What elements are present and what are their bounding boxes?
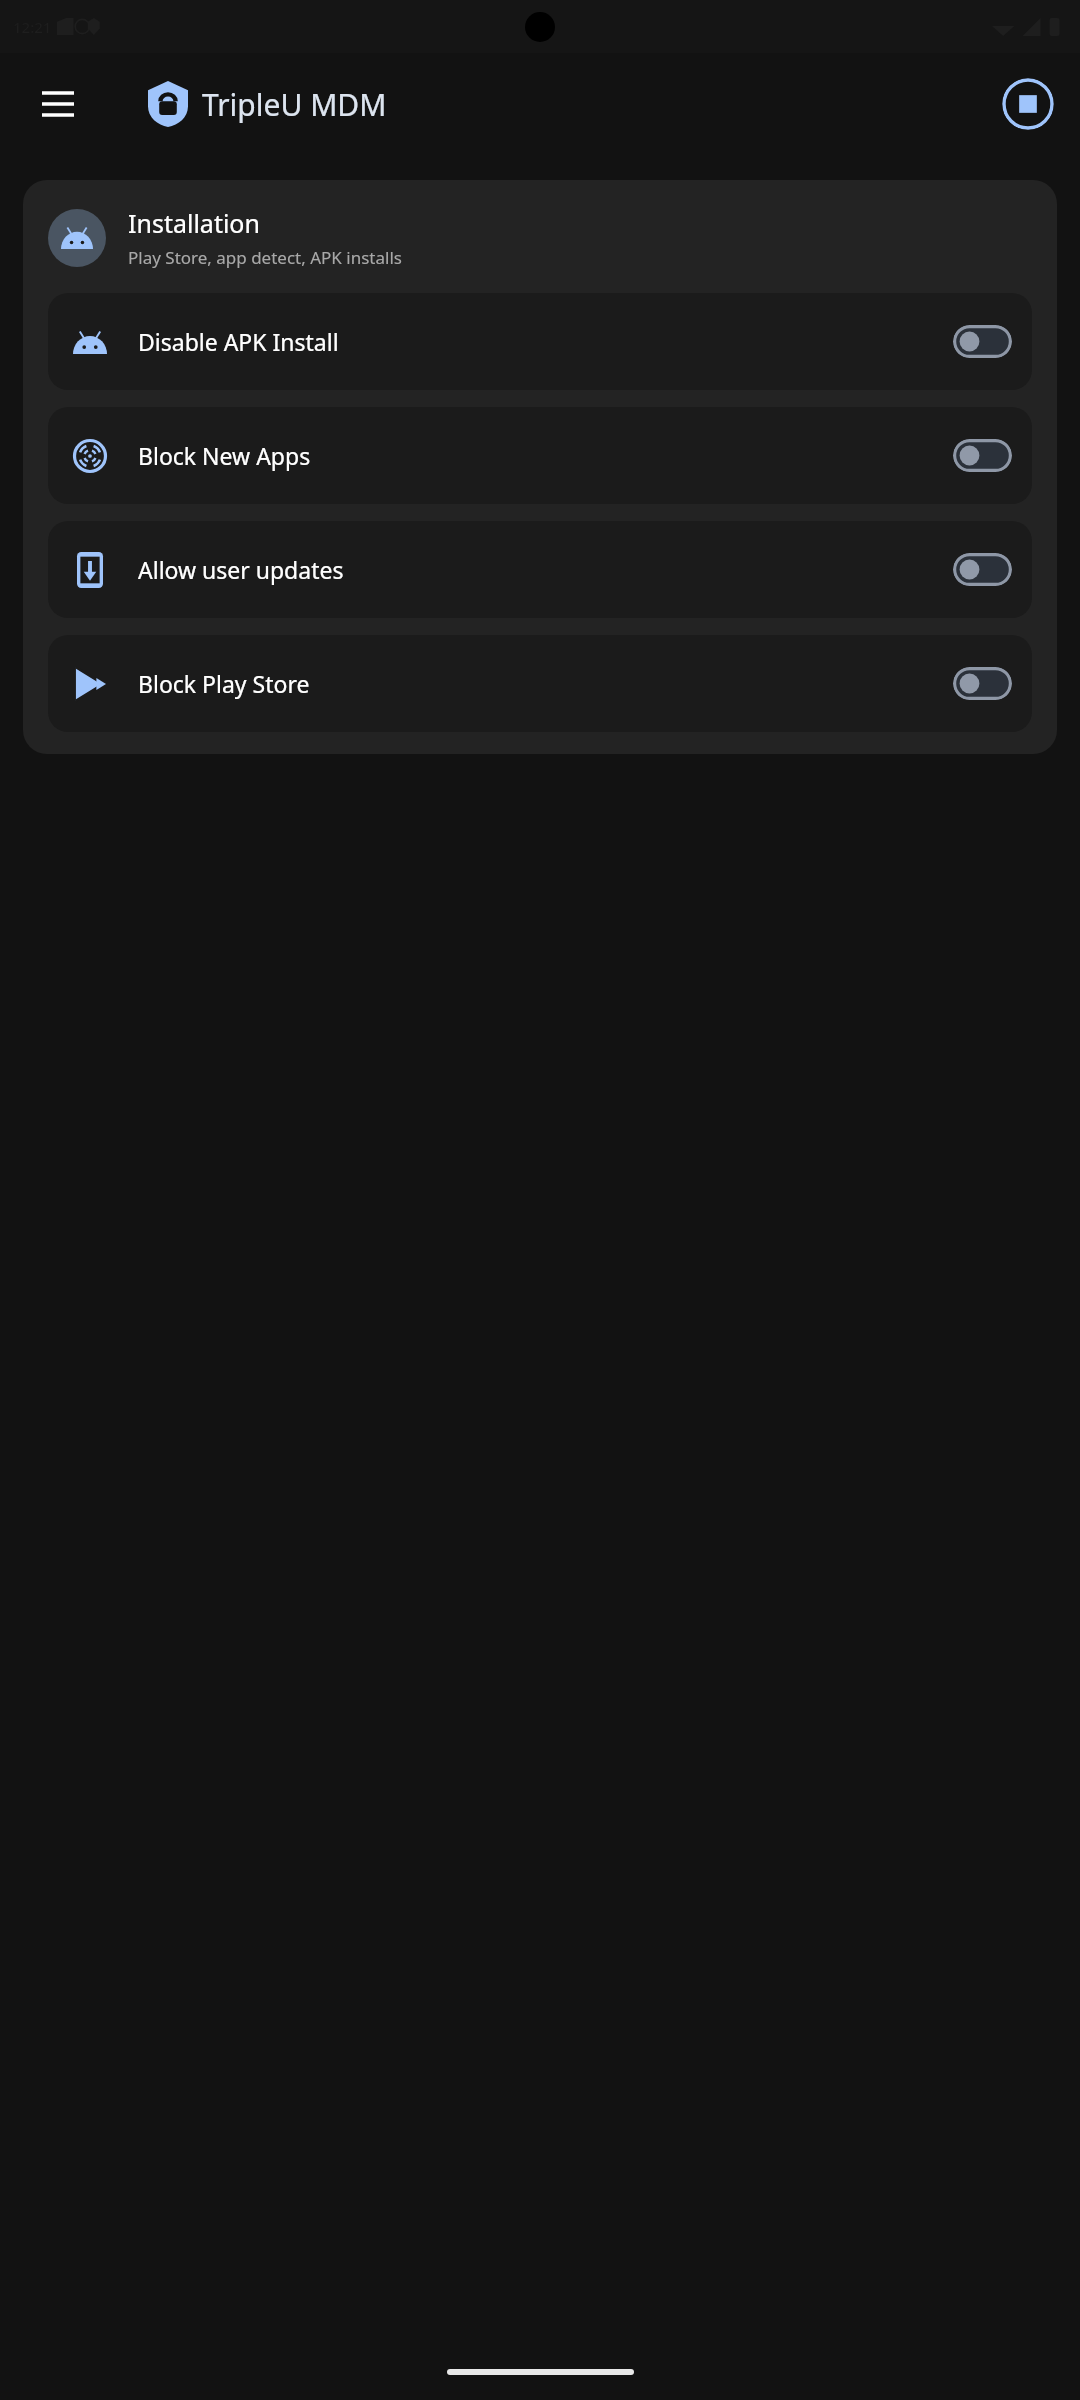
button[interactable]: Installation: [48, 202, 1032, 273]
button[interactable]: Toggle off: [953, 439, 1012, 472]
staticText: Block New Apps: [138, 440, 953, 471]
staticText: Installation: [128, 206, 260, 240]
button[interactable]: Toggle off: [953, 325, 1012, 358]
button[interactable]: Toggle off: [953, 553, 1012, 586]
staticText: Block Play Store: [138, 668, 953, 699]
button[interactable]: Block New Apps: [48, 407, 1032, 504]
staticText: Disable APK Install: [138, 326, 953, 357]
button[interactable]: Block Play Store: [48, 635, 1032, 732]
staticText: TripleU MDM: [202, 84, 387, 125]
button[interactable]: Disable APK Install: [48, 293, 1032, 390]
staticText: Play Store, app detect, APK installs: [128, 246, 402, 269]
button[interactable]: Allow user updates: [48, 521, 1032, 618]
button[interactable]: Toggle off: [953, 667, 1012, 700]
staticText: Allow user updates: [138, 554, 953, 585]
button[interactable]: Open navigation menu: [30, 76, 86, 132]
button[interactable]: Stop: [1002, 78, 1054, 130]
